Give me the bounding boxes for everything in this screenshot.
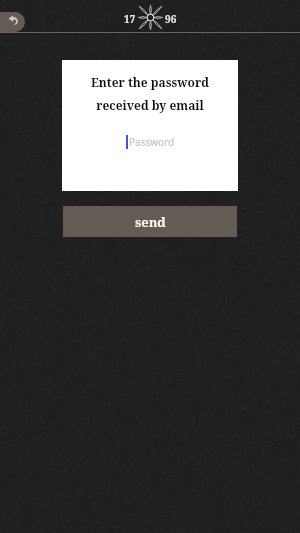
staticText: 17 [124, 12, 136, 26]
button[interactable]: Password [126, 134, 175, 150]
staticText: 96 [165, 12, 177, 26]
staticText: Enter the password [62, 74, 238, 90]
staticText: send [135, 213, 166, 231]
staticText: Password [129, 135, 175, 149]
staticText: received by email [62, 97, 238, 113]
button[interactable]: Back [0, 12, 25, 32]
button[interactable]: send [63, 206, 237, 237]
button[interactable]: 17 96 emblem [124, 4, 177, 33]
